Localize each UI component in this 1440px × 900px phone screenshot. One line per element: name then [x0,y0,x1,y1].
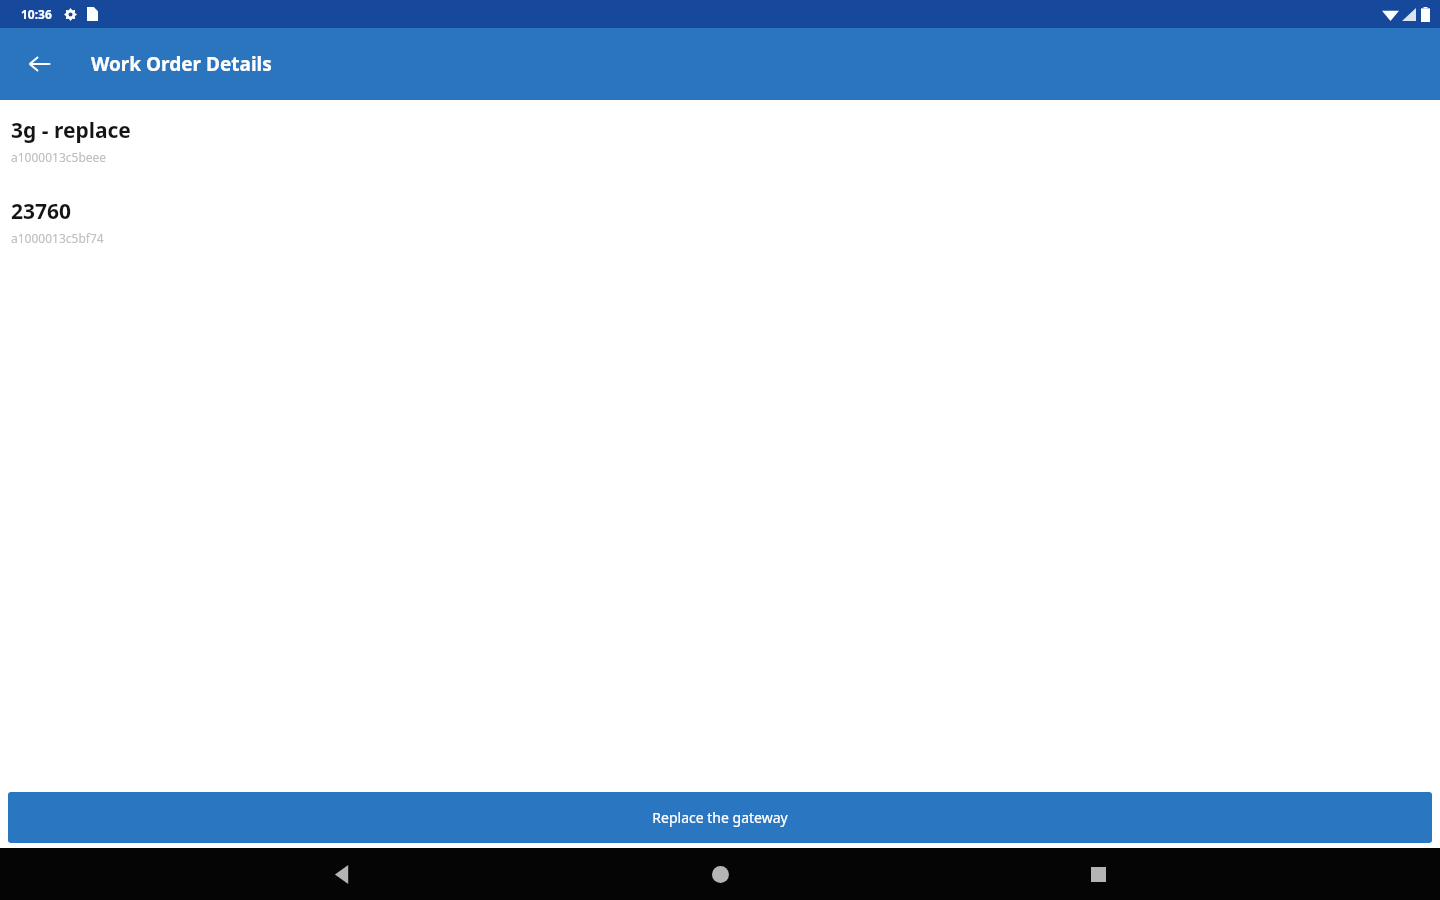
staticText: 23760 [11,197,72,226]
staticText: a1000013c5beee [11,149,107,165]
staticText: 3g - replace [11,116,131,145]
staticText: Replace the gateway [652,808,788,827]
button[interactable]: Recent apps [1062,848,1134,900]
button[interactable]: Home [684,848,756,900]
button[interactable]: Back [306,848,378,900]
button[interactable]: Replace the gateway [8,792,1432,843]
staticText: Work Order Details [91,51,272,77]
staticText: 10:36 [21,6,52,22]
button[interactable]: 3g - replace [0,114,1440,167]
button[interactable]: Back [18,42,62,86]
staticText: a1000013c5bf74 [11,230,104,246]
button[interactable]: 23760 [0,195,1440,248]
